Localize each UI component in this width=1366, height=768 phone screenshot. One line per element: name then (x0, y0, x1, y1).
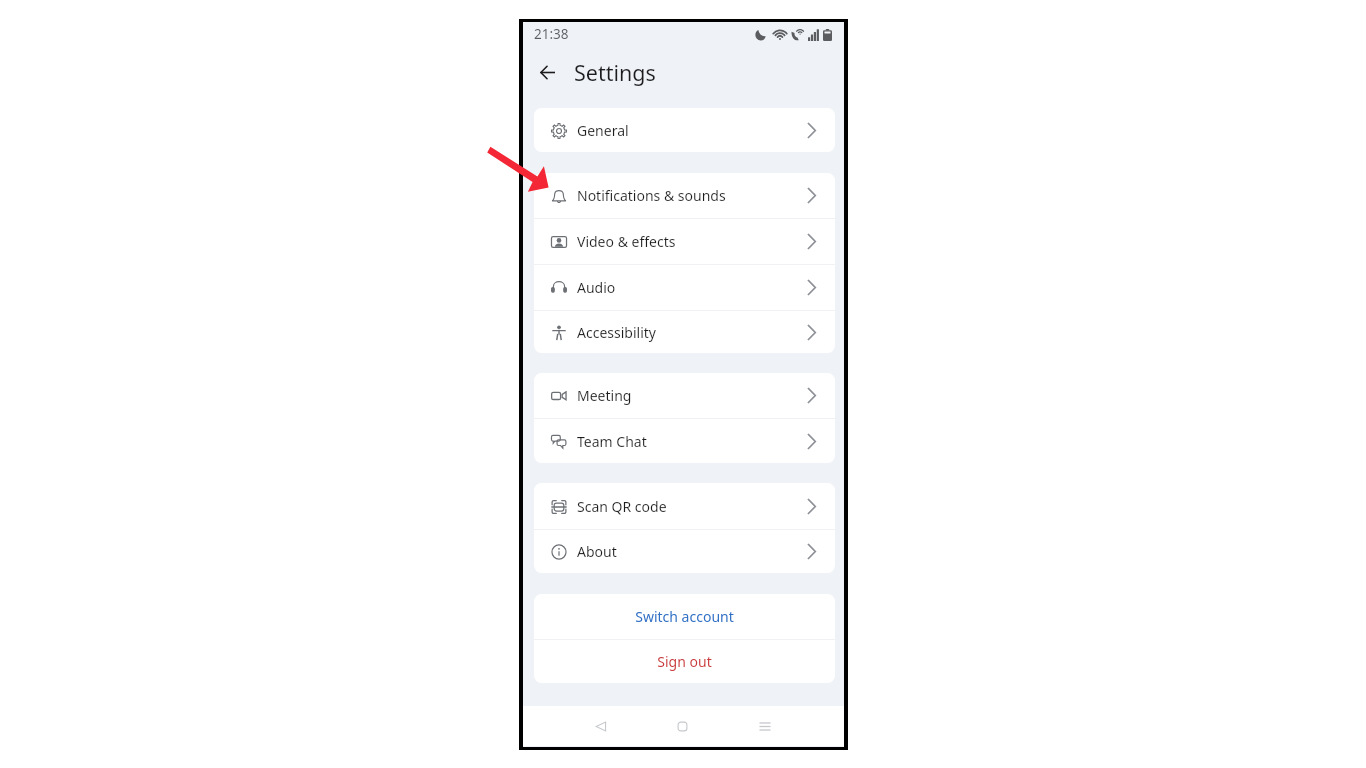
button[interactable]: Home (662, 706, 703, 746)
button[interactable]: General (534, 108, 835, 152)
button[interactable]: Scan QR code (534, 483, 835, 529)
staticText: Team Chat (577, 432, 647, 451)
staticText: Meeting (577, 386, 632, 405)
button[interactable]: Team Chat (534, 419, 835, 463)
staticText: Accessibility (577, 323, 656, 342)
staticText: Scan QR code (577, 497, 667, 516)
button[interactable]: Notifications & sounds (534, 173, 835, 218)
staticText: Settings (574, 58, 656, 87)
button[interactable]: Recent apps (744, 706, 785, 746)
button[interactable]: Audio (534, 265, 835, 310)
staticText: Audio (577, 278, 616, 297)
button[interactable]: Sign out (534, 640, 835, 683)
staticText: Sign out (657, 652, 712, 671)
staticText: 21:38 (534, 25, 569, 43)
staticText: About (577, 542, 617, 561)
button[interactable]: Accessibility (534, 311, 835, 353)
button[interactable]: Meeting (534, 373, 835, 418)
button[interactable]: Back (531, 56, 564, 89)
staticText: Switch account (635, 607, 734, 626)
button[interactable]: About (534, 530, 835, 573)
staticText: Notifications & sounds (577, 186, 726, 205)
button[interactable]: Back (580, 706, 621, 746)
staticText: Video & effects (577, 232, 676, 251)
staticText: General (577, 121, 629, 140)
button[interactable]: Video & effects (534, 219, 835, 264)
button[interactable]: Switch account (534, 594, 835, 639)
